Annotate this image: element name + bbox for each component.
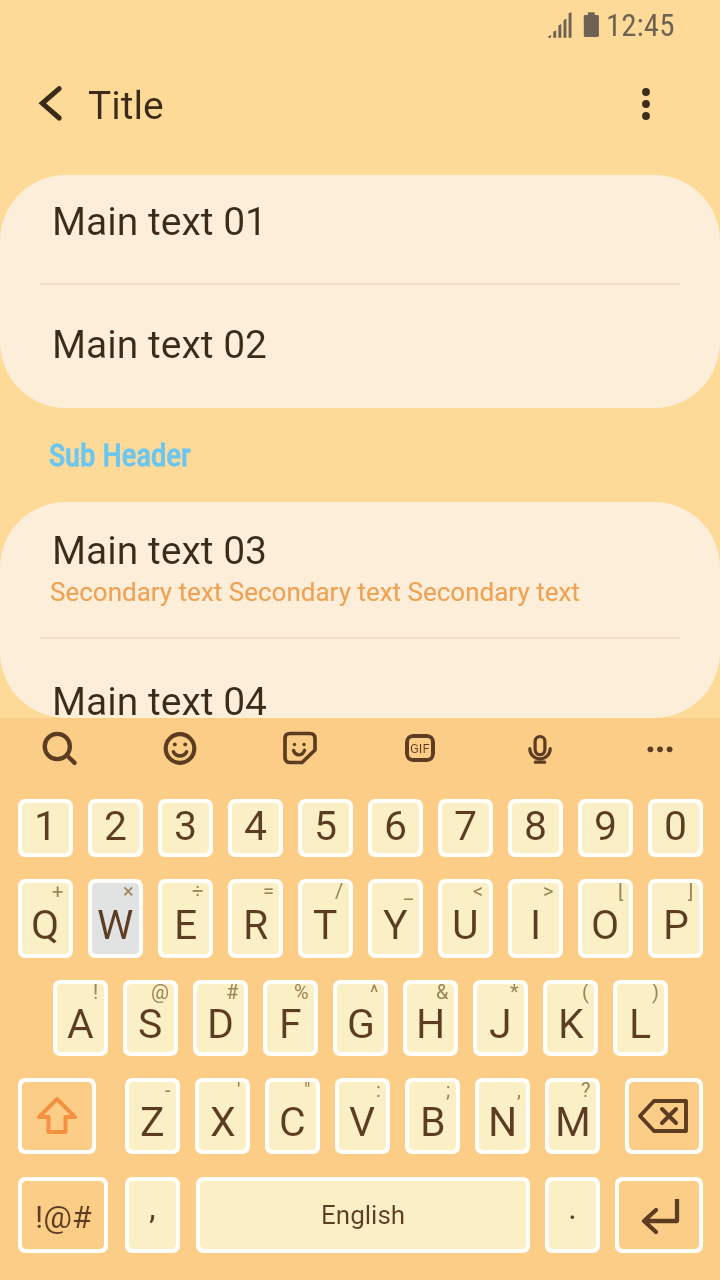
button[interactable]: Navigate up xyxy=(19,71,83,135)
button[interactable]: J xyxy=(477,984,524,1052)
button[interactable]: More xyxy=(626,714,694,782)
button[interactable]: P xyxy=(652,883,699,954)
button[interactable]: R xyxy=(232,883,279,954)
button[interactable]: . xyxy=(549,1181,596,1249)
staticText: C xyxy=(279,1098,306,1146)
staticText: N xyxy=(488,1098,518,1146)
button[interactable]: W xyxy=(92,883,139,954)
staticText: ( xyxy=(582,984,589,1003)
button[interactable]: 7 xyxy=(442,803,489,853)
staticText: 6 xyxy=(384,803,408,850)
staticText: / xyxy=(335,883,344,902)
staticText: K xyxy=(558,1000,584,1048)
button[interactable]: Main text 03 xyxy=(0,502,720,637)
button[interactable]: G xyxy=(337,984,384,1052)
button[interactable]: E xyxy=(162,883,209,954)
button[interactable]: Voice input xyxy=(506,714,574,782)
button[interactable]: 6 xyxy=(372,803,419,853)
staticText: D xyxy=(207,1000,234,1048)
button[interactable]: N xyxy=(479,1082,526,1150)
staticText: 0 xyxy=(664,803,688,850)
button[interactable]: Q xyxy=(22,883,69,954)
button[interactable]: U xyxy=(442,883,489,954)
staticText: P xyxy=(663,901,689,949)
staticText: # xyxy=(226,984,239,1003)
button[interactable]: English xyxy=(200,1181,526,1249)
button[interactable]: 5 xyxy=(302,803,349,853)
button[interactable]: O xyxy=(582,883,629,954)
button[interactable]: X xyxy=(199,1082,246,1150)
button[interactable]: Search xyxy=(26,714,94,782)
staticText: > xyxy=(543,883,554,902)
staticText: O xyxy=(591,901,620,949)
button[interactable]: More options xyxy=(614,72,678,136)
button[interactable]: C xyxy=(269,1082,316,1150)
button[interactable]: , xyxy=(129,1181,176,1249)
button[interactable]: F xyxy=(267,984,314,1052)
staticText: ^ xyxy=(370,984,379,1003)
staticText: English xyxy=(321,1200,406,1230)
staticText: X xyxy=(210,1098,236,1146)
staticText: H xyxy=(416,1000,446,1048)
staticText: Main text 04 xyxy=(52,679,268,718)
button[interactable]: 3 xyxy=(162,803,209,853)
staticText: G xyxy=(347,1000,375,1048)
button[interactable]: 9 xyxy=(582,803,629,853)
staticText: A xyxy=(67,1000,94,1048)
staticText: . xyxy=(568,1187,577,1227)
staticText: V xyxy=(349,1098,376,1146)
staticText: , xyxy=(149,1187,156,1227)
button[interactable]: D xyxy=(197,984,244,1052)
button[interactable]: T xyxy=(302,883,349,954)
staticText: 7 xyxy=(454,803,478,850)
staticText: U xyxy=(452,901,479,949)
staticText: I xyxy=(530,901,542,949)
button[interactable]: Y xyxy=(372,883,419,954)
staticText: ' xyxy=(237,1082,241,1101)
button[interactable]: Shift xyxy=(22,1082,92,1150)
button[interactable]: 1 xyxy=(22,803,69,853)
button[interactable]: Stickers xyxy=(266,714,334,782)
button[interactable]: S xyxy=(127,984,174,1052)
staticText: 4 xyxy=(244,803,268,850)
button[interactable]: H xyxy=(407,984,454,1052)
button[interactable]: V xyxy=(339,1082,386,1150)
staticText: _ xyxy=(404,883,414,902)
button[interactable]: 2 xyxy=(92,803,139,853)
staticText: 3 xyxy=(174,803,198,850)
staticText: - xyxy=(165,1082,171,1101)
button[interactable]: Main text 02 xyxy=(0,283,720,408)
button[interactable]: A xyxy=(57,984,104,1052)
staticText: 12:45 xyxy=(606,7,675,43)
button[interactable]: L xyxy=(617,984,664,1052)
button[interactable]: Main text 01 xyxy=(0,175,720,283)
button[interactable]: 4 xyxy=(232,803,279,853)
staticText: = xyxy=(263,883,274,902)
button[interactable]: K xyxy=(547,984,594,1052)
button[interactable]: Main text 04 xyxy=(0,637,720,718)
button[interactable]: Z xyxy=(129,1082,176,1150)
staticText: Y xyxy=(383,901,408,949)
button[interactable]: GIF xyxy=(386,714,454,782)
button[interactable]: B xyxy=(409,1082,456,1150)
staticText: ] xyxy=(688,883,694,902)
staticText: 5 xyxy=(314,803,338,850)
staticText: J xyxy=(489,1000,512,1048)
staticText: ÷ xyxy=(192,883,204,902)
button[interactable]: Sub Header xyxy=(0,420,720,492)
staticText: × xyxy=(123,883,134,902)
staticText: Main text 01 xyxy=(52,199,268,245)
button[interactable]: Backspace xyxy=(629,1082,699,1150)
staticText: Z xyxy=(140,1098,165,1146)
button[interactable]: I xyxy=(512,883,559,954)
button[interactable]: Enter xyxy=(619,1181,699,1249)
button[interactable]: M xyxy=(549,1082,596,1150)
staticText: @ xyxy=(151,984,169,1003)
button[interactable]: 8 xyxy=(512,803,559,853)
staticText: E xyxy=(174,901,198,949)
staticText: ) xyxy=(652,984,659,1003)
staticText: " xyxy=(304,1082,311,1101)
button[interactable]: !@# xyxy=(22,1181,104,1249)
button[interactable]: Emoji xyxy=(146,714,214,782)
button[interactable]: 0 xyxy=(652,803,699,853)
